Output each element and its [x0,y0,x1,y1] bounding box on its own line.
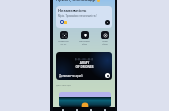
staticText: Привіт, Олександр [56,0,96,3]
staticText: Заяви збори [102,40,108,45]
button[interactable]: Home [59,107,67,111]
button[interactable]: Оновлення ОС тут [56,31,71,45]
button[interactable]: ARMY OF DRONES [56,52,112,80]
staticText: Військовий облік [79,40,90,45]
button[interactable]: More [105,20,110,25]
staticText: Для чого це? [56,83,71,86]
staticText: Незалежність [58,8,87,13]
button[interactable]: Заяви збори [97,31,112,45]
button[interactable] [59,92,111,107]
staticText: Допомогти армії [59,74,83,78]
button[interactable]: Documents [73,107,81,111]
button[interactable]: Військовий облік [77,31,92,45]
button[interactable]: Donate [105,73,110,78]
button[interactable]: Незалежність [56,6,112,28]
staticText: Оновлення ОС тут [58,40,69,45]
button[interactable]: Services [87,107,95,111]
staticText: ARMY OF DRONES [75,61,94,69]
staticText: Мрія. Тримаймо незалежність! [58,14,97,18]
button[interactable]: Menu [101,107,109,111]
